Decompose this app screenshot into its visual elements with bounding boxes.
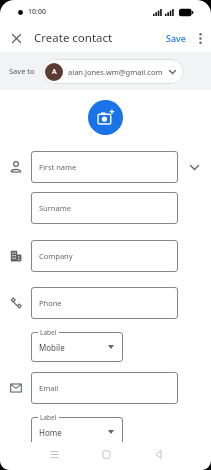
button[interactable]: Surname [31,192,178,224]
button[interactable] [191,29,209,47]
button[interactable]: Company [31,240,178,272]
button[interactable]: Save [162,28,191,48]
staticText: Company [39,251,73,261]
staticText: First name [39,162,77,172]
staticText: alan.jones.wm@gmail.com [68,67,163,77]
staticText: Surname [39,203,71,213]
staticText: Label [40,413,57,422]
button[interactable]: A [42,59,184,84]
button[interactable] [96,444,116,464]
staticText: Phone [39,298,62,308]
button[interactable] [8,30,24,46]
button[interactable]: Phone [31,287,178,319]
staticText: Save to [9,66,35,76]
staticText: A [52,67,57,77]
staticText: Email [39,383,59,393]
staticText: Mobile [39,342,65,353]
button[interactable]: Email [31,372,178,404]
staticText: Label [40,328,57,337]
staticText: 10:00 [28,7,46,17]
button[interactable]: First name [31,151,178,183]
staticText: Save [166,32,187,44]
staticText: Create contact [34,30,113,46]
button[interactable] [88,100,123,135]
button[interactable] [148,444,168,464]
button[interactable] [44,444,64,464]
staticText: Home [39,427,62,438]
button[interactable]: Home [31,417,123,447]
button[interactable]: Mobile [31,332,123,362]
